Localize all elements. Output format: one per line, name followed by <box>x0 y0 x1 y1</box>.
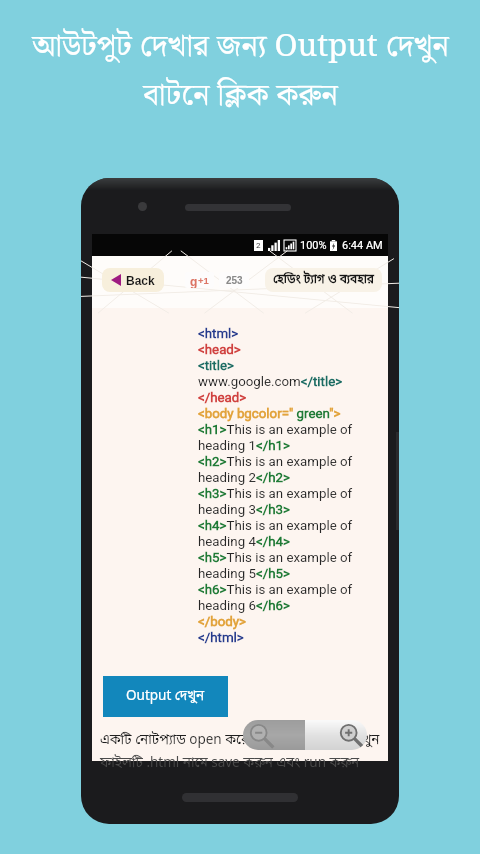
staticText: ফাইলটি .html নামে save করুন এবং run করুন <box>100 755 360 773</box>
button[interactable]: Output দেখুন <box>103 676 228 717</box>
staticText: একটি নোটপ্যাড open করে নিচের কোডগুলো লিখ… <box>100 732 380 750</box>
staticText: <h6>This is an example of <box>198 582 353 598</box>
staticText: <html> <box>198 326 239 342</box>
staticText: </html> <box>198 630 244 646</box>
staticText: 2 <box>256 241 261 250</box>
staticText: <body bgcolor=" green"> <box>198 406 341 422</box>
staticText: <h5>This is an example of <box>198 550 353 566</box>
staticText: বাটনে ক্লিক করুন <box>143 71 338 120</box>
staticText: 100% <box>300 239 327 252</box>
staticText: heading 6</h6> <box>198 598 290 614</box>
staticText: 6:44 AM <box>342 239 383 252</box>
staticText: হেডিং ট্যাগ ও ব্যবহার <box>273 272 374 288</box>
staticText: heading 2</h2> <box>198 470 290 486</box>
button[interactable]: Zoom out <box>243 720 305 750</box>
staticText: </head> <box>198 390 247 406</box>
button[interactable]: Zoom in <box>305 720 367 750</box>
staticText: <h4>This is an example of <box>198 518 353 534</box>
staticText: g <box>190 275 198 288</box>
staticText: heading 5</h5> <box>198 566 290 582</box>
staticText: heading 3</h3> <box>198 502 290 518</box>
button[interactable]: হেডিং ট্যাগ ও ব্যবহার <box>265 268 382 292</box>
staticText: heading 1</h1> <box>198 438 290 454</box>
button[interactable]: g <box>185 272 214 288</box>
staticText: <head> <box>198 342 241 358</box>
staticText: <h1>This is an example of <box>198 422 353 438</box>
staticText: <h3>This is an example of <box>198 486 353 502</box>
staticText: www.google.com</title> <box>198 374 343 390</box>
staticText: 253 <box>226 275 243 286</box>
staticText: আউটপুট দেখার জন্য Output দেখুন <box>32 22 449 71</box>
staticText: +1 <box>198 275 209 286</box>
staticText: <title> <box>198 358 234 374</box>
staticText: </body> <box>198 614 247 630</box>
button[interactable]: Back <box>102 268 164 292</box>
staticText: <h2>This is an example of <box>198 454 353 470</box>
staticText: heading 4</h4> <box>198 534 290 550</box>
staticText: Output দেখুন <box>126 688 205 706</box>
staticText: Back <box>126 274 155 287</box>
